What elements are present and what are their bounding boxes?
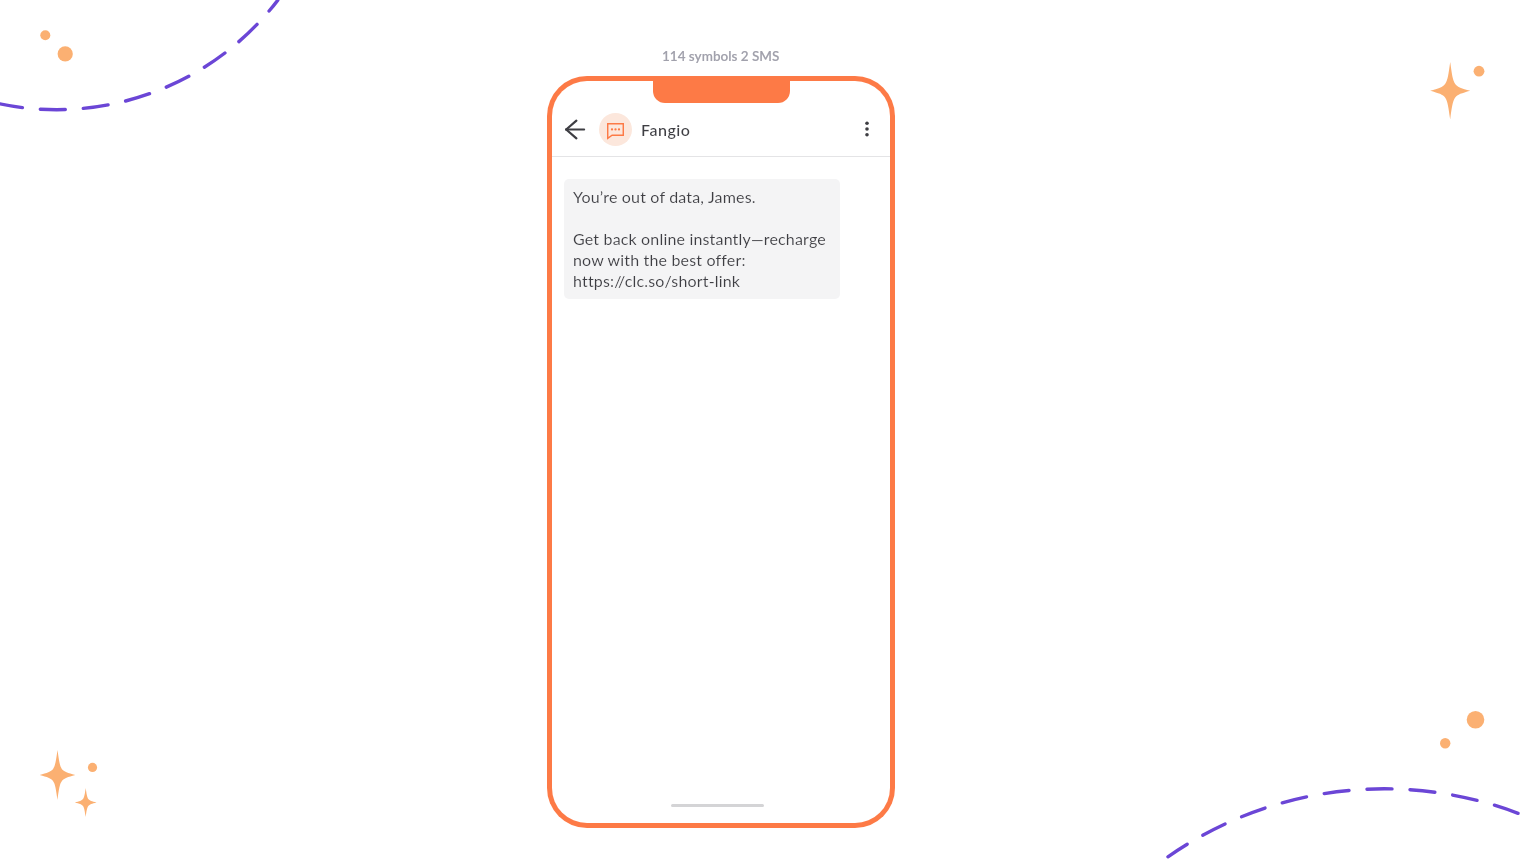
button[interactable]: You’re out of data, James. Get back onli… — [564, 179, 840, 299]
staticText: 114 symbols 2 SMS — [662, 48, 780, 64]
button[interactable]: More options — [852, 114, 882, 144]
button[interactable]: Back — [560, 114, 590, 144]
staticText: You’re out of data, James. Get back onli… — [573, 187, 826, 291]
staticText: Fangio — [641, 120, 691, 139]
